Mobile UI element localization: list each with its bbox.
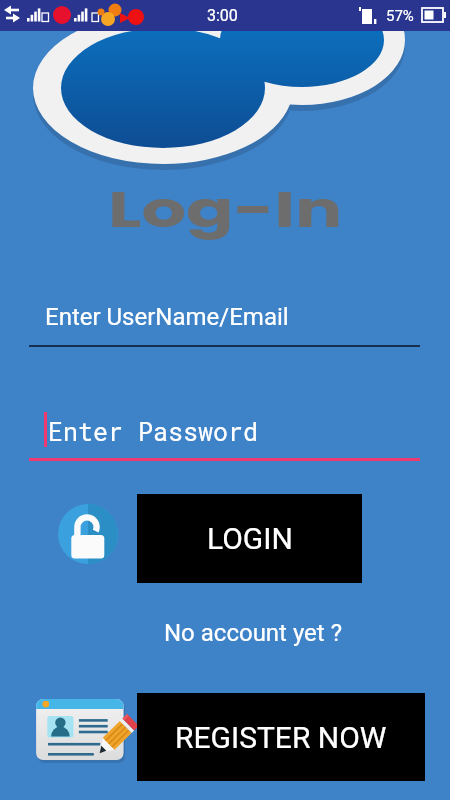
button[interactable]: No account yet ? [158, 615, 348, 651]
staticText: Enter Password [48, 415, 259, 448]
button[interactable]: LOGIN [137, 494, 362, 583]
staticText: Enter UserName/Email [45, 303, 289, 331]
button[interactable]: Register [36, 697, 141, 767]
staticText: REGISTER NOW [175, 720, 387, 755]
staticText: 57% [386, 7, 414, 25]
button[interactable]: Unlock [58, 504, 118, 564]
staticText: LOGIN [207, 521, 293, 556]
staticText: No account yet ? [164, 619, 342, 647]
button[interactable]: REGISTER NOW [137, 693, 425, 781]
button[interactable]: Enter Password [29, 412, 420, 461]
staticText: 3:00 [207, 6, 238, 25]
button[interactable]: Enter UserName/Email [29, 300, 420, 347]
staticText: Log-In [108, 176, 342, 245]
